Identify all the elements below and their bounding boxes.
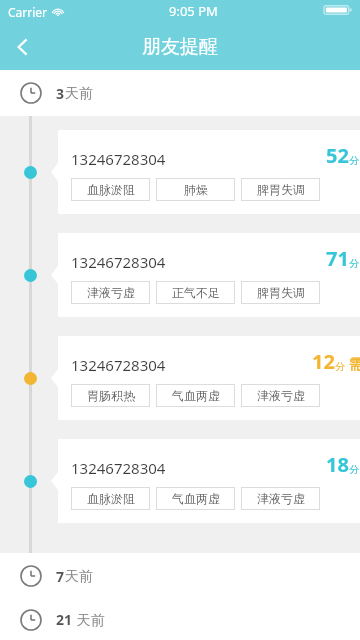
staticText: 津液亏虚 xyxy=(257,388,305,403)
button[interactable]: 肺燥 xyxy=(156,178,235,201)
staticText: 13246728304 xyxy=(71,355,166,375)
button[interactable]: 津液亏虚 xyxy=(241,384,320,407)
staticText: 分 xyxy=(349,154,359,167)
staticText: 天前 xyxy=(73,610,105,629)
button[interactable]: 胃肠积热 xyxy=(71,384,150,407)
staticText: 天前 xyxy=(65,85,93,103)
staticText: 脾胃失调 xyxy=(257,182,305,197)
staticText: 分 xyxy=(349,463,359,476)
staticText: 13246728304 xyxy=(71,252,166,272)
button[interactable]: 脾胃失调 xyxy=(241,281,320,304)
staticText: 正气不足 xyxy=(172,285,220,300)
staticText: 18 xyxy=(326,451,349,478)
button[interactable]: 13246728304 xyxy=(71,451,360,523)
button[interactable]: 津液亏虚 xyxy=(241,487,320,510)
staticText: 分 xyxy=(349,257,359,270)
staticText: 分 xyxy=(335,360,345,373)
button[interactable]: 血脉淤阻 xyxy=(71,178,150,201)
staticText: 71 xyxy=(326,245,349,272)
button[interactable]: 血脉淤阻 xyxy=(71,487,150,510)
button[interactable]: 脾胃失调 xyxy=(241,178,320,201)
button[interactable]: 3 xyxy=(0,70,360,116)
button[interactable]: 13246728304 xyxy=(71,348,360,420)
staticText: 7 xyxy=(56,567,65,586)
staticText: 12 xyxy=(312,348,335,375)
staticText: 13246728304 xyxy=(71,458,166,478)
button[interactable]: 7 xyxy=(0,553,360,599)
staticText: 津液亏虚 xyxy=(257,491,305,506)
staticText: 需要警惕 xyxy=(349,356,360,374)
staticText: 21 xyxy=(56,610,73,629)
staticText: 胃肠积热 xyxy=(87,388,135,403)
staticText: 9:05 PM xyxy=(169,2,218,20)
button[interactable]: 气血两虚 xyxy=(156,384,235,407)
staticText: 气血两虚 xyxy=(172,388,220,403)
button[interactable]: 正气不足 xyxy=(156,281,235,304)
staticText: 脾胃失调 xyxy=(257,285,305,300)
staticText: 天前 xyxy=(65,568,93,586)
staticText: 52 xyxy=(326,142,349,169)
staticText: 津液亏虚 xyxy=(87,285,135,300)
staticText: 气血两虚 xyxy=(172,491,220,506)
button[interactable]: Back xyxy=(0,24,46,70)
button[interactable]: 气血两虚 xyxy=(156,487,235,510)
button[interactable]: 13246728304 xyxy=(71,142,360,214)
staticText: 肺燥 xyxy=(184,182,208,197)
staticText: 3 xyxy=(56,84,65,103)
button[interactable]: 13246728304 xyxy=(71,245,360,317)
staticText: 血脉淤阻 xyxy=(87,182,135,197)
staticText: 血脉淤阻 xyxy=(87,491,135,506)
button[interactable]: 津液亏虚 xyxy=(71,281,150,304)
staticText: 朋友提醒 xyxy=(142,35,218,59)
staticText: Carrier xyxy=(8,4,48,20)
staticText: 13246728304 xyxy=(71,149,166,169)
button[interactable]: 21 xyxy=(0,599,360,640)
